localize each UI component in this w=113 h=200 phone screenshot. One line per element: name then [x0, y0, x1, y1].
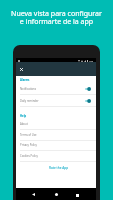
button[interactable]: Home [55, 193, 58, 196]
button[interactable]: Back [32, 193, 35, 196]
button[interactable]: Daily reminder [16, 95, 96, 106]
button[interactable]: Cookies Policy [16, 151, 96, 161]
staticText: 100 [89, 59, 94, 62]
button[interactable]: Close [19, 67, 24, 72]
button[interactable]: About [16, 119, 96, 129]
staticText: Nueva vista para configurar e informarte… [4, 9, 109, 26]
staticText: Daily reminder [20, 99, 85, 103]
button[interactable]: Notifications [16, 83, 96, 94]
staticText: Help [20, 114, 27, 118]
staticText: Alarms [20, 78, 30, 82]
button[interactable]: Terms of Use [16, 130, 96, 140]
staticText: Rate the App [49, 166, 69, 170]
staticText: Notifications [20, 87, 85, 91]
staticText: Privacy Policy [20, 143, 37, 147]
staticText: Terms of Use [20, 133, 37, 137]
button[interactable]: Privacy Policy [16, 140, 96, 150]
staticText: Cookies Policy [20, 154, 38, 158]
button[interactable]: Rate the App [16, 161, 96, 174]
staticText: About [20, 122, 28, 126]
